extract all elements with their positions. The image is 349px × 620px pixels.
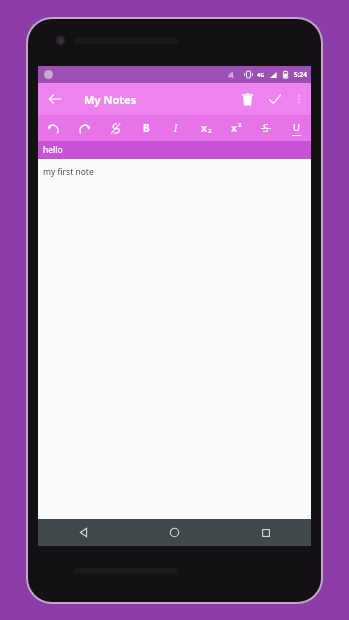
button[interactable]: Strikethrough (251, 115, 281, 141)
staticText: U (293, 121, 300, 134)
button[interactable]: Bold (131, 115, 161, 141)
button[interactable]: Delete (233, 85, 261, 113)
staticText: B (143, 121, 150, 135)
staticText: X (201, 122, 208, 134)
button[interactable]: Undo (38, 115, 69, 141)
staticText: my first note (43, 166, 94, 178)
staticText: S (263, 121, 269, 135)
staticText: My Notes (84, 92, 137, 107)
button[interactable]: Recent apps (220, 519, 311, 546)
button[interactable]: More options (289, 89, 309, 109)
button[interactable]: Save (261, 85, 289, 113)
button[interactable]: Redo (69, 115, 100, 141)
staticText: 2 (208, 127, 212, 135)
staticText: hello (43, 144, 63, 156)
button[interactable]: Underline (281, 115, 311, 141)
button[interactable]: Italic (161, 115, 191, 141)
button[interactable]: Subscript (191, 115, 221, 141)
button[interactable]: hello (38, 141, 311, 159)
staticText: X (231, 122, 238, 134)
button[interactable]: Back (38, 519, 129, 546)
button[interactable]: Superscript (221, 115, 251, 141)
staticText: 5:24 (294, 70, 307, 79)
button[interactable]: Home (129, 519, 220, 546)
staticText: 4G (257, 71, 265, 78)
button[interactable]: Clear formatting (100, 115, 131, 141)
staticText: 2 (238, 121, 242, 129)
button[interactable]: Back (42, 86, 68, 112)
staticText: I (174, 121, 178, 135)
